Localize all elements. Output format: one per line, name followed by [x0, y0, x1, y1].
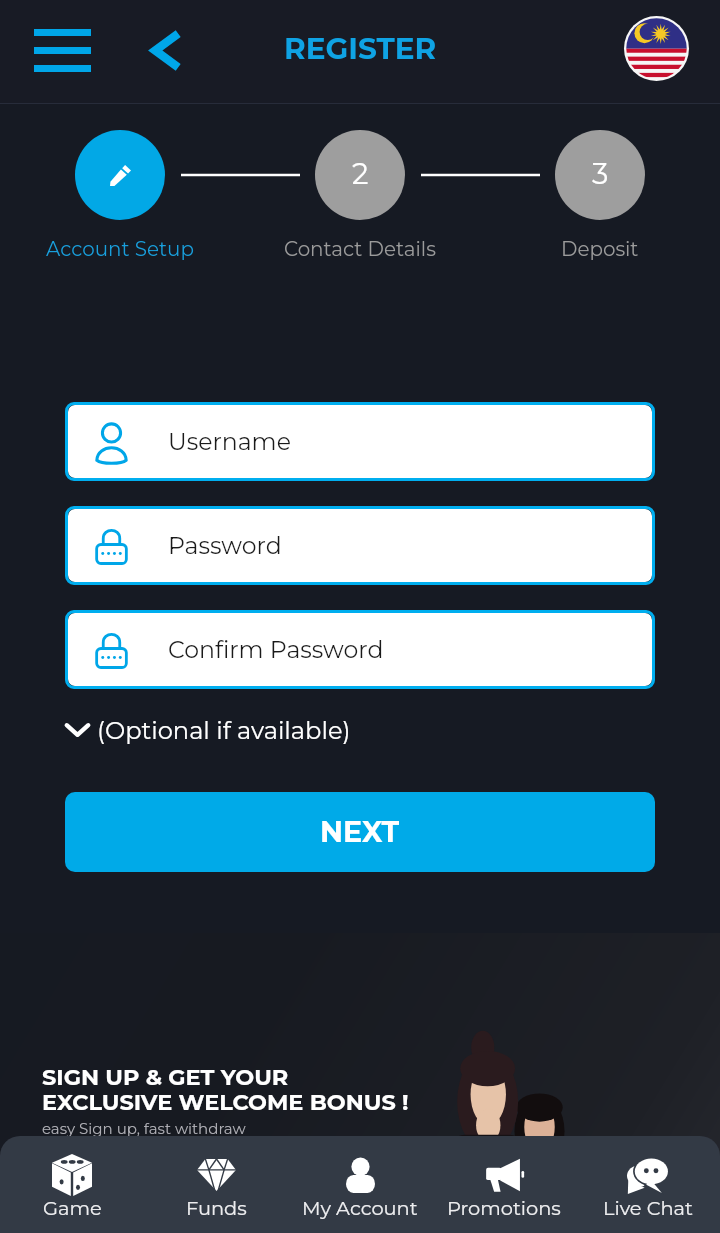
button[interactable]: NEXT: [65, 792, 655, 872]
staticText: 3: [592, 156, 609, 191]
button[interactable]: Game: [0, 1136, 144, 1233]
button[interactable]: Username: [68, 405, 652, 478]
button[interactable]: Funds: [144, 1136, 288, 1233]
staticText: SIGN UP & GET YOUR: [42, 1063, 289, 1090]
staticText: 2: [352, 156, 369, 191]
button[interactable]: Menu: [14, 8, 111, 92]
staticText: easy Sign up, fast withdraw: [42, 1119, 246, 1137]
staticText: Username: [168, 427, 291, 456]
staticText: Password: [168, 531, 282, 560]
button[interactable]: Password: [68, 509, 652, 582]
staticText: EXCLUSIVE WELCOME BONUS !: [42, 1088, 409, 1115]
staticText: Confirm Password: [168, 635, 384, 664]
staticText: REGISTER: [284, 30, 437, 66]
button[interactable]: (Optional if available): [65, 705, 351, 755]
staticText: Deposit: [561, 237, 639, 261]
button[interactable]: Account Setup: [2, 130, 238, 261]
button[interactable]: Language: [613, 5, 699, 91]
staticText: (Optional if available): [97, 716, 351, 745]
button[interactable]: Confirm Password: [68, 613, 652, 686]
staticText: Game: [43, 1196, 102, 1220]
button[interactable]: 3: [482, 130, 718, 261]
staticText: Funds: [186, 1196, 247, 1220]
staticText: My Account: [302, 1196, 418, 1220]
button[interactable]: Back: [125, 8, 205, 92]
button[interactable]: My Account: [288, 1136, 432, 1233]
staticText: Live Chat: [603, 1196, 693, 1220]
staticText: Account Setup: [46, 237, 194, 261]
staticText: Promotions: [447, 1196, 561, 1220]
button[interactable]: Promotions: [432, 1136, 576, 1233]
button[interactable]: 2: [242, 130, 478, 261]
staticText: Contact Details: [284, 237, 436, 261]
staticText: NEXT: [320, 814, 400, 849]
button[interactable]: Live Chat: [576, 1136, 720, 1233]
